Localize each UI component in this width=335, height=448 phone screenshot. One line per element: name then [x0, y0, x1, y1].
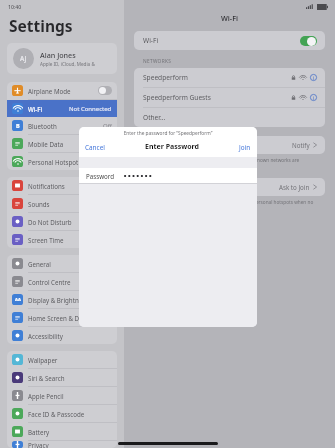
- button[interactable]: AA: [7, 291, 117, 308]
- button[interactable]: Face ID & Passcode: [7, 405, 117, 422]
- staticText: Privacy: [28, 441, 112, 448]
- staticText: Wi-Fi: [143, 36, 300, 45]
- staticText: 10:40: [8, 3, 22, 10]
- button[interactable]: Mobile Data: [7, 135, 117, 152]
- staticText: Home Screen & Dock: [28, 314, 112, 322]
- staticText: Password: [86, 172, 114, 180]
- staticText: Screen Time: [28, 236, 112, 244]
- staticText: Ask to Join Networks: [143, 141, 292, 150]
- button[interactable]: Apple Pencil: [7, 387, 117, 404]
- staticText: Other…: [143, 113, 166, 122]
- staticText: Enter Password: [145, 142, 199, 152]
- button[interactable]: Sounds: [7, 195, 117, 212]
- button[interactable]: Wi-Fi: [7, 100, 117, 117]
- button[interactable]: AJ: [7, 43, 117, 74]
- button[interactable]: Notifications: [7, 177, 117, 194]
- button[interactable]: More info: [310, 94, 317, 101]
- button[interactable]: Control Centre: [7, 273, 117, 290]
- staticText: Airplane Mode: [28, 87, 98, 95]
- button[interactable]: Home Screen & Dock: [7, 309, 117, 326]
- button[interactable]: Speedperform Guests: [134, 88, 325, 107]
- button[interactable]: Wallpaper: [7, 351, 117, 368]
- button[interactable]: Join: [233, 141, 257, 154]
- staticText: Known networks will be joined automatica…: [143, 157, 316, 163]
- button[interactable]: B: [7, 117, 117, 134]
- button[interactable]: Auto-Join Hotspot: [134, 178, 325, 196]
- staticText: i: [313, 75, 315, 81]
- staticText: General: [28, 260, 112, 268]
- staticText: Off: [103, 122, 112, 130]
- staticText: Display & Brightness: [28, 296, 112, 304]
- button[interactable]: Do Not Disturb: [7, 213, 117, 230]
- staticText: Alan Jones: [40, 50, 76, 60]
- button[interactable]: General: [7, 255, 117, 272]
- staticText: Enter the password for “Speedperform”: [79, 130, 257, 137]
- staticText: Not Connected: [69, 105, 112, 113]
- staticText: Bluetooth: [28, 122, 103, 130]
- staticText: Face ID & Passcode: [28, 410, 112, 418]
- button[interactable]: Personal Hotspot: [7, 153, 117, 170]
- staticText: Cancel: [85, 143, 105, 152]
- staticText: Do Not Disturb: [28, 218, 112, 226]
- staticText: Personal Hotspot: [28, 158, 112, 166]
- staticText: Auto-Join Hotspot: [143, 183, 279, 192]
- staticText: Battery: [28, 428, 112, 436]
- staticText: NETWORKS: [143, 58, 172, 65]
- staticText: Siri & Search: [28, 374, 112, 382]
- staticText: B: [16, 122, 20, 129]
- button[interactable]: Battery: [7, 423, 117, 440]
- button[interactable]: More info: [310, 74, 317, 81]
- button[interactable]: Siri & Search: [7, 369, 117, 386]
- button[interactable]: Accessibility: [7, 327, 117, 344]
- button[interactable]: Privacy: [7, 441, 117, 448]
- staticText: Sounds: [28, 200, 112, 208]
- staticText: Control Centre: [28, 278, 112, 286]
- button[interactable]: Screen Time: [7, 231, 117, 248]
- button[interactable]: Other…: [134, 108, 325, 127]
- staticText: Notify: [292, 141, 310, 149]
- button[interactable]: Cancel: [79, 141, 111, 154]
- staticText: notified of available networks.: [143, 164, 210, 170]
- button[interactable]: Password: [79, 168, 257, 183]
- staticText: Accessibility: [28, 332, 112, 340]
- staticText: i: [313, 95, 315, 101]
- staticText: Join: [239, 143, 251, 152]
- button[interactable]: Ask to Join Networks: [134, 136, 325, 154]
- staticText: AA: [15, 297, 21, 303]
- staticText: Speedperform Guests: [143, 93, 291, 102]
- staticText: Apple ID, iCloud, Media & Purchases: [40, 61, 111, 67]
- staticText: Mobile Data: [28, 140, 112, 148]
- staticText: Wallpaper: [28, 356, 112, 364]
- staticText: Ask to Join: [279, 183, 310, 191]
- staticText: Speedperform: [143, 73, 291, 82]
- button[interactable]: Speedperform: [134, 68, 325, 87]
- staticText: Settings: [9, 15, 73, 36]
- staticText: Allow this device to automatically disco…: [143, 199, 316, 205]
- staticText: AJ: [20, 54, 27, 63]
- button[interactable]: Wi-Fi: [134, 31, 325, 50]
- staticText: Apple Pencil: [28, 392, 112, 400]
- staticText: Wi-Fi: [28, 105, 69, 113]
- staticText: Wi-Fi: [124, 13, 335, 23]
- staticText: Notifications: [28, 182, 112, 190]
- button[interactable]: Airplane Mode: [7, 82, 117, 99]
